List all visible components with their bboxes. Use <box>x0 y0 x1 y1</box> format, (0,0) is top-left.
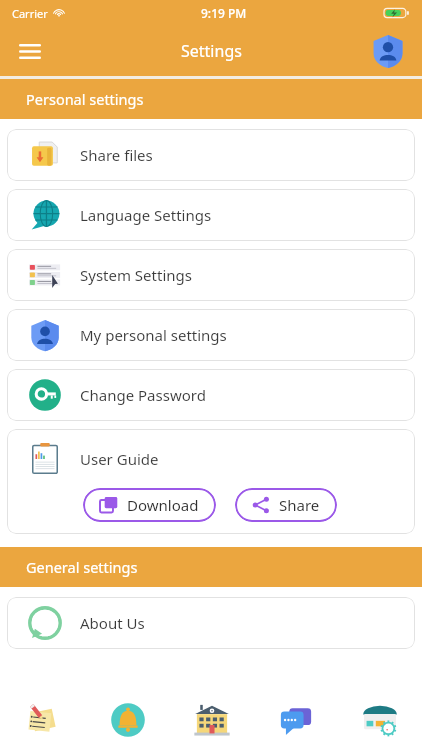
button[interactable]: Share files <box>7 129 415 181</box>
button[interactable]: Profile <box>366 29 410 73</box>
button[interactable]: Profile <box>338 690 422 750</box>
staticText: Download <box>127 495 199 515</box>
staticText: Settings <box>181 40 242 62</box>
staticText: System Settings <box>80 265 192 285</box>
staticText: User Guide <box>80 449 159 469</box>
staticText: Carrier <box>12 6 48 21</box>
staticText: General settings <box>26 557 138 577</box>
button[interactable]: My personal settings <box>7 309 415 361</box>
button[interactable]: Share <box>235 488 337 522</box>
button[interactable]: Notes <box>0 690 85 750</box>
button[interactable]: System Settings <box>7 249 415 301</box>
staticText: My personal settings <box>80 325 227 345</box>
button[interactable]: Download <box>83 488 216 522</box>
button[interactable]: Menu <box>10 31 50 71</box>
staticText: About Us <box>80 613 145 633</box>
staticText: Share <box>279 495 320 515</box>
staticText: Language Settings <box>80 205 212 225</box>
button[interactable]: Alerts <box>85 690 170 750</box>
button[interactable]: Messages <box>254 690 338 750</box>
button[interactable]: School <box>170 690 254 750</box>
staticText: 9:19 PM <box>201 5 247 21</box>
staticText: Change Password <box>80 385 206 405</box>
button[interactable]: About Us <box>7 597 415 649</box>
button[interactable]: Language Settings <box>7 189 415 241</box>
button[interactable]: Change Password <box>7 369 415 421</box>
staticText: Personal settings <box>26 89 144 109</box>
staticText: Share files <box>80 145 153 165</box>
